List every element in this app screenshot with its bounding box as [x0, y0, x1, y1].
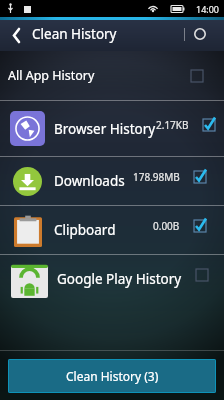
staticText: 2.17KB	[156, 118, 189, 132]
staticText: Clipboard	[54, 221, 116, 239]
button[interactable]: Clipboard	[0, 206, 224, 254]
button[interactable]: Back	[0, 17, 32, 51]
button[interactable]: Clean History (3)	[8, 359, 216, 393]
staticText: 178.98MB	[133, 170, 180, 184]
staticText: Downloads	[54, 172, 125, 190]
button[interactable]: Google Play History	[0, 255, 224, 303]
button[interactable]: Browser History	[0, 101, 224, 156]
button[interactable]: Refresh	[185, 17, 215, 51]
staticText: 14:00	[196, 3, 220, 15]
button[interactable]: All App History	[0, 51, 224, 100]
staticText: Google Play History	[57, 270, 182, 288]
staticText: Clean History	[32, 25, 117, 43]
button[interactable]: Downloads	[0, 157, 224, 205]
staticText: Browser History	[54, 120, 156, 138]
staticText: Clean History (3)	[66, 368, 159, 384]
staticText: 0.00B	[153, 219, 180, 233]
staticText: All App History	[8, 67, 95, 84]
